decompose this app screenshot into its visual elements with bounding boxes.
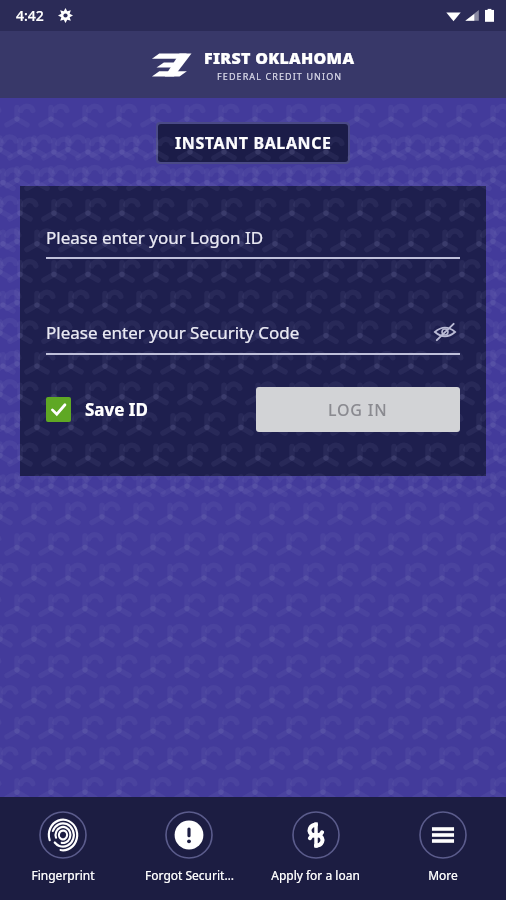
staticText: Please enter your Security Code bbox=[46, 321, 430, 344]
button[interactable]: Apply for a loan bbox=[252, 797, 379, 900]
button[interactable]: More bbox=[379, 797, 506, 900]
button[interactable]: Forgot Securit… bbox=[126, 797, 252, 900]
button[interactable]: Show security code bbox=[430, 317, 460, 347]
staticText: Save ID bbox=[85, 398, 148, 421]
button[interactable]: Please enter your Security Code bbox=[46, 317, 460, 355]
button[interactable]: Fingerprint bbox=[0, 797, 126, 900]
staticText: LOG IN bbox=[328, 399, 388, 421]
button[interactable]: LOG IN bbox=[256, 387, 460, 432]
staticText: Forgot Securit… bbox=[145, 867, 234, 883]
button[interactable]: INSTANT BALANCE bbox=[158, 124, 348, 162]
staticText: FEDERAL CREDIT UNION bbox=[217, 70, 343, 82]
staticText: Fingerprint bbox=[31, 867, 95, 883]
staticText: FIRST OKLAHOMA bbox=[204, 47, 355, 69]
staticText: Apply for a loan bbox=[271, 867, 360, 883]
staticText: More bbox=[428, 867, 458, 883]
staticText: 4:42 bbox=[16, 6, 44, 25]
button[interactable]: Please enter your Logon ID bbox=[46, 226, 460, 259]
staticText: Please enter your Logon ID bbox=[46, 226, 264, 249]
staticText: INSTANT BALANCE bbox=[175, 132, 332, 154]
button[interactable]: Save ID bbox=[46, 397, 148, 422]
